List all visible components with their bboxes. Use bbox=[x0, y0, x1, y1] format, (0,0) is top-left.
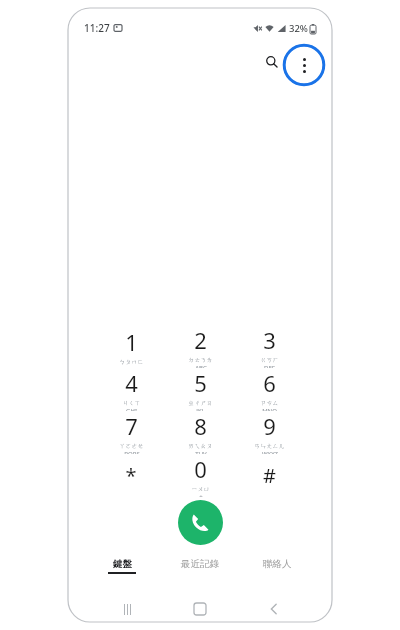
staticText: TUV bbox=[195, 450, 207, 454]
button[interactable]: 聯絡人 bbox=[263, 558, 292, 570]
staticText: ㄚㄛㄜㄝ bbox=[119, 442, 144, 450]
staticText: 3 bbox=[263, 325, 276, 355]
button[interactable]: 4 bbox=[96, 368, 166, 411]
staticText: ㄧㄨㄩ bbox=[191, 485, 210, 493]
staticText: 32% bbox=[289, 22, 308, 35]
staticText: WXYZ bbox=[262, 450, 278, 454]
staticText: DEF bbox=[264, 364, 275, 368]
button[interactable]: Recents bbox=[112, 598, 142, 620]
staticText: 9 bbox=[263, 411, 276, 441]
staticText: + bbox=[199, 493, 203, 497]
staticText: PQRS bbox=[124, 450, 140, 454]
staticText: ㄢㄣㄤㄥㄦ bbox=[254, 442, 285, 450]
staticText: MNO bbox=[262, 407, 277, 411]
button[interactable]: # bbox=[235, 454, 304, 497]
staticText: 7 bbox=[125, 411, 138, 441]
staticText: ㄓㄔㄕㄖ bbox=[188, 399, 213, 407]
staticText: ㄞㄟㄠㄡ bbox=[188, 442, 213, 450]
button[interactable]: Call bbox=[178, 500, 223, 545]
button[interactable]: 2 bbox=[166, 325, 235, 368]
button[interactable]: 8 bbox=[166, 411, 235, 454]
button[interactable]: Home bbox=[185, 598, 215, 620]
staticText: 5 bbox=[194, 368, 207, 398]
staticText: 聯絡人 bbox=[263, 558, 292, 570]
button[interactable]: 6 bbox=[235, 368, 304, 411]
staticText: 2 bbox=[194, 325, 207, 355]
staticText: 4 bbox=[125, 368, 138, 398]
staticText: 鍵盤 bbox=[113, 558, 132, 570]
staticText: GHI bbox=[126, 407, 137, 411]
staticText: JKL bbox=[196, 407, 205, 411]
button[interactable]: 7 bbox=[96, 411, 166, 454]
staticText: ㄉㄊㄋㄌ bbox=[188, 356, 213, 364]
staticText: ㄍㄎㄏ bbox=[260, 356, 279, 364]
staticText: ABC bbox=[195, 364, 207, 368]
staticText: 6 bbox=[263, 368, 276, 398]
button[interactable]: Search bbox=[262, 52, 282, 72]
button[interactable]: * bbox=[96, 454, 166, 497]
staticText: 0 bbox=[194, 454, 207, 484]
staticText: ㄐㄑㄒ bbox=[122, 399, 141, 407]
staticText: # bbox=[263, 462, 276, 489]
button[interactable]: 3 bbox=[235, 325, 304, 368]
button[interactable]: 0 bbox=[166, 454, 235, 497]
button[interactable]: 1 bbox=[96, 325, 166, 368]
staticText: 8 bbox=[194, 411, 207, 441]
button[interactable]: More options bbox=[282, 43, 326, 87]
staticText: * bbox=[125, 462, 137, 489]
staticText: ㄗㄘㄙ bbox=[260, 399, 279, 407]
staticText: ㄅㄆㄇㄈ bbox=[119, 358, 144, 366]
staticText: 1 bbox=[125, 327, 138, 357]
button[interactable]: 9 bbox=[235, 411, 304, 454]
button[interactable]: Back bbox=[259, 598, 289, 620]
button[interactable]: 最近記錄 bbox=[181, 558, 219, 570]
button[interactable]: 鍵盤 bbox=[108, 558, 136, 574]
button[interactable]: 5 bbox=[166, 368, 235, 411]
staticText: 最近記錄 bbox=[181, 558, 219, 570]
staticText: 11:27 bbox=[84, 21, 110, 35]
